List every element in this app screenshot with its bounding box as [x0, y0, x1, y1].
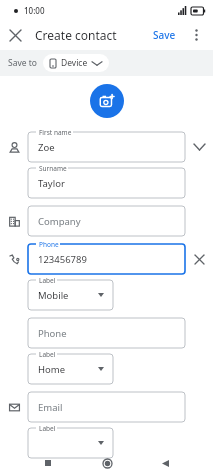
button[interactable]: Close — [0, 20, 30, 50]
staticText: Company — [38, 215, 81, 228]
staticText: Label — [39, 424, 56, 433]
staticText: Label — [39, 350, 56, 359]
staticText: Taylor — [38, 177, 65, 190]
button[interactable]: Phone — [28, 318, 185, 348]
button[interactable]: Label — [28, 354, 113, 384]
staticText: Surname — [39, 164, 67, 173]
staticText: Device — [61, 57, 88, 69]
button[interactable]: Email — [28, 392, 185, 422]
button[interactable]: Company — [28, 206, 185, 236]
button[interactable]: Label — [28, 280, 113, 310]
staticText: Save — [153, 28, 176, 42]
staticText: Phone — [39, 240, 59, 249]
staticText: Email — [38, 401, 63, 414]
button[interactable]: Label — [28, 428, 113, 458]
staticText: Mobile — [38, 289, 69, 302]
button[interactable]: Expand name fields — [185, 132, 213, 162]
staticText: Home — [38, 363, 66, 376]
staticText: First name — [39, 128, 72, 137]
button[interactable]: Phone — [28, 244, 185, 274]
button[interactable]: Add photo — [90, 84, 124, 118]
button[interactable]: More options — [183, 22, 209, 48]
staticText: Label — [39, 276, 56, 285]
staticText: 10:00 — [24, 5, 45, 16]
button[interactable]: Device — [43, 54, 109, 72]
button[interactable]: Back — [154, 452, 176, 474]
button[interactable]: Clear phone number — [185, 244, 213, 274]
button[interactable]: Surname — [28, 168, 185, 198]
staticText: 123456789 — [38, 253, 87, 266]
button[interactable]: Save — [148, 24, 181, 46]
staticText: Save to — [8, 57, 37, 69]
staticText: Zoe — [38, 141, 55, 154]
button[interactable]: Recents — [37, 452, 59, 474]
staticText: Create contact — [35, 27, 117, 43]
button[interactable]: First name — [28, 132, 185, 162]
button[interactable]: Home — [96, 452, 118, 474]
staticText: Phone — [38, 327, 67, 340]
